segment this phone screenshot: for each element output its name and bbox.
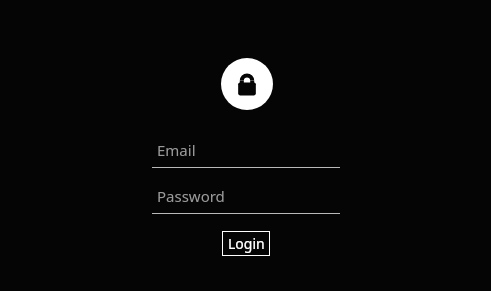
staticText: Password (157, 186, 225, 206)
staticText: Email (157, 140, 196, 160)
button[interactable]: Login (222, 231, 270, 256)
other: Secure login (221, 58, 273, 110)
button[interactable]: Password (152, 186, 340, 214)
button[interactable]: Email (152, 140, 340, 168)
staticText: Login (228, 234, 265, 253)
